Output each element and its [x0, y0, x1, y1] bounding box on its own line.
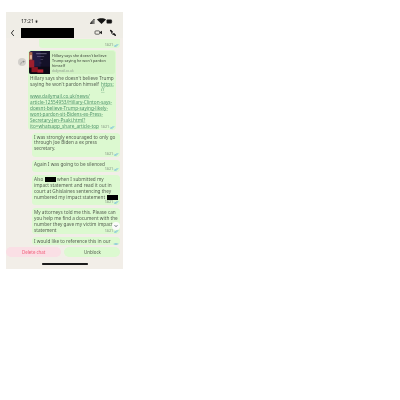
button[interactable]: I was strongly encouraged to only go thr…	[32, 133, 120, 157]
staticText: Also	[34, 176, 44, 182]
staticText: saying he won't pardon himself	[30, 81, 101, 87]
staticText: Secretary-Jen-Psaki.html?	[30, 117, 86, 123]
staticText: when I submitted my victim	[57, 176, 118, 182]
button[interactable]: I would like to reference this in our	[32, 237, 120, 245]
staticText: wont-pardon-sit-Bidens-ex-Press-	[30, 111, 104, 117]
staticText: numbered my impact statement	[34, 194, 106, 200]
staticText: Delete chat	[22, 249, 46, 255]
button[interactable]: Delete chat	[6, 247, 61, 257]
staticText: I was strongly encouraged to only go thr…	[34, 134, 118, 152]
staticText: Hillary says she doesn't believe	[52, 53, 107, 58]
staticText: dailymail.co.uk	[52, 69, 74, 73]
staticText: My attorneys told me this. Please can	[34, 209, 116, 215]
staticText: statement	[34, 227, 57, 233]
staticText: number they gave my victim impact	[34, 221, 113, 227]
staticText: article-12554953/Hillary-Clinton-says-	[30, 99, 113, 105]
staticText: doesnt-believe-Trump-saying-likely-	[30, 105, 108, 111]
button[interactable]: Unblock	[64, 247, 120, 257]
staticText: Hillary says she doesn't believe Trump	[30, 75, 114, 81]
button[interactable]: My attorneys told me this. Please can	[32, 208, 120, 234]
staticText: court at Ghislaines sentencing they	[34, 188, 112, 194]
staticText: 14:21	[105, 200, 113, 204]
staticText: 14:21	[105, 167, 113, 171]
button[interactable]: Back	[8, 28, 17, 37]
staticText: I would like to reference this in our	[34, 238, 111, 244]
button[interactable]: Again I was going to be silenced	[32, 160, 120, 172]
staticText: 14:21	[105, 152, 113, 156]
staticText: www.dailymail.co.uk/news/	[30, 93, 90, 99]
button[interactable]: Scroll to bottom	[112, 222, 120, 230]
staticText: 14:21	[105, 229, 113, 233]
staticText: impact statement and read it out in	[34, 182, 112, 188]
button[interactable]: Hillary says she doesn't believe	[28, 50, 116, 130]
staticText: Again I was going to be silenced	[34, 161, 105, 167]
button[interactable]: Voice call	[108, 28, 117, 37]
staticText: 14:21	[101, 125, 109, 129]
staticText: himself	[52, 63, 66, 68]
button[interactable]: Video call	[94, 28, 103, 37]
staticText: https://	[101, 81, 114, 93]
staticText: ito=whatsapp_share_article-top	[30, 123, 99, 129]
staticText: you help me find a document with the	[34, 215, 118, 221]
button[interactable]: Also	[32, 175, 120, 205]
staticText: 17:21	[21, 18, 34, 25]
staticText: Trump saying he won't pardon	[52, 58, 106, 63]
staticText: Unblock	[84, 249, 101, 255]
staticText: 14:21	[105, 43, 113, 47]
